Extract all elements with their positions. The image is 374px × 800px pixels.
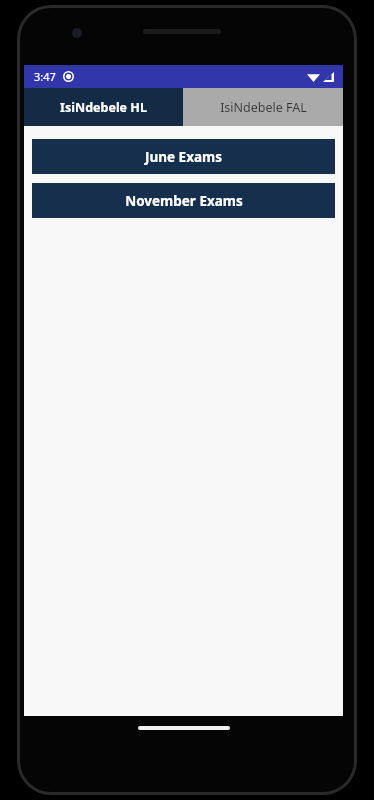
staticText: IsiNdebele FAL <box>220 99 307 116</box>
staticText: November Exams <box>125 192 243 210</box>
button[interactable]: June Exams <box>32 139 335 174</box>
button[interactable]: November Exams <box>32 183 335 218</box>
staticText: 3:47 <box>34 69 56 84</box>
staticText: June Exams <box>145 148 222 166</box>
staticText: IsiNdebele HL <box>60 99 147 116</box>
button[interactable]: IsiNdebele FAL <box>183 88 343 126</box>
button[interactable]: IsiNdebele HL <box>24 88 183 126</box>
